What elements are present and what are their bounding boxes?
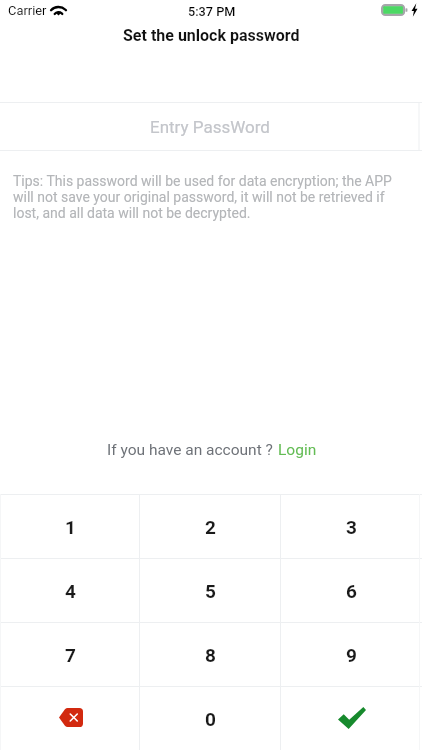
button[interactable]: 1 bbox=[0, 494, 140, 558]
button[interactable]: 3 bbox=[281, 494, 422, 558]
staticText: 5 bbox=[205, 580, 216, 602]
staticText: 3 bbox=[346, 516, 357, 538]
staticText: Entry PassWord bbox=[150, 117, 270, 137]
button[interactable]: 8 bbox=[140, 622, 281, 686]
other: Confirm bbox=[338, 707, 366, 729]
button[interactable]: Login bbox=[278, 441, 317, 459]
other: Delete bbox=[59, 708, 83, 727]
staticText: 5:37 PM bbox=[188, 4, 236, 19]
button[interactable]: 9 bbox=[281, 622, 422, 686]
staticText: 1 bbox=[65, 516, 76, 538]
staticText: Login bbox=[278, 441, 317, 459]
button[interactable]: Confirm bbox=[281, 686, 422, 750]
button[interactable]: 5 bbox=[140, 558, 281, 622]
staticText: Carrier bbox=[8, 3, 47, 18]
button[interactable]: 7 bbox=[0, 622, 140, 686]
button[interactable]: Delete bbox=[0, 686, 140, 750]
staticText: Set the unlock password bbox=[123, 26, 300, 45]
staticText: 6 bbox=[346, 580, 357, 602]
staticText: 7 bbox=[65, 644, 76, 666]
staticText: 9 bbox=[346, 644, 357, 666]
button[interactable]: 2 bbox=[140, 494, 281, 558]
staticText: Tips: This password will be used for dat… bbox=[13, 173, 398, 221]
staticText: 2 bbox=[205, 516, 216, 538]
button[interactable]: 4 bbox=[0, 558, 140, 622]
staticText: 4 bbox=[65, 580, 76, 602]
button[interactable]: 6 bbox=[281, 558, 422, 622]
staticText: If you have an account ? bbox=[107, 441, 277, 459]
button[interactable]: 0 bbox=[140, 686, 281, 750]
staticText: 8 bbox=[205, 644, 216, 666]
staticText: 0 bbox=[205, 708, 216, 730]
